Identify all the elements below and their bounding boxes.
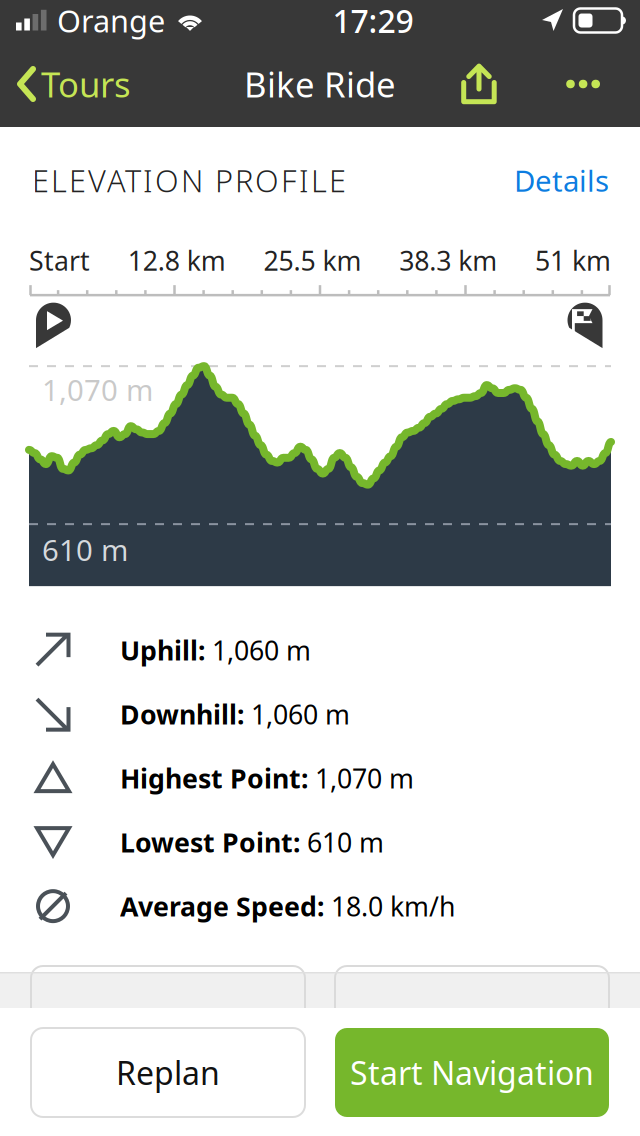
button[interactable]: Details: [514, 161, 609, 200]
staticText: 17:29: [332, 0, 413, 42]
staticText: Start: [29, 243, 90, 278]
staticText: 38.3 km: [399, 243, 497, 278]
staticText: Highest Point: 1,070 m: [120, 760, 414, 796]
button[interactable]: Tours: [0, 41, 141, 127]
button[interactable]: Share: [437, 41, 539, 127]
staticText: Average Speed: 18.0 km/h: [120, 888, 455, 924]
staticText: 12.8 km: [128, 243, 226, 278]
staticText: Downhill: 1,060 m: [120, 696, 350, 732]
button[interactable]: Replan: [31, 1028, 305, 1117]
staticText: Tours: [41, 61, 131, 107]
staticText: 25.5 km: [263, 243, 361, 278]
staticText: Lowest Point: 610 m: [120, 824, 384, 860]
staticText: 610 m: [42, 530, 128, 569]
staticText: ELEVATION PROFILE: [32, 160, 346, 201]
button[interactable]: More options: [539, 41, 640, 127]
button[interactable]: Start Navigation: [335, 1028, 609, 1117]
staticText: Replan: [116, 1051, 220, 1094]
staticText: Orange: [57, 0, 165, 41]
staticText: 1,070 m: [42, 370, 153, 409]
staticText: Bike Ride: [244, 61, 396, 107]
staticText: Start Navigation: [350, 1051, 594, 1094]
staticText: 51 km: [535, 243, 611, 278]
staticText: Uphill: 1,060 m: [120, 632, 311, 668]
staticText: Details: [514, 161, 609, 200]
